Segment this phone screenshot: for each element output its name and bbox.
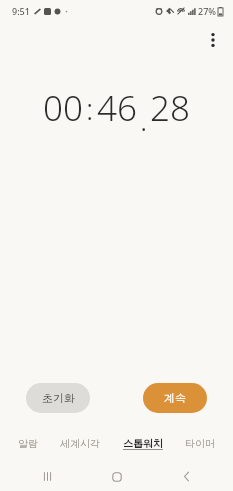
button[interactable]: 스톱워치 (123, 437, 163, 450)
button[interactable]: Recent apps (25, 462, 69, 491)
button[interactable]: More options (197, 24, 229, 56)
staticText: 27% (198, 5, 216, 17)
staticText: 46 (97, 84, 137, 132)
staticText: 00 (43, 84, 83, 132)
staticText: 타이머 (185, 437, 215, 450)
button[interactable]: 초기화 (26, 383, 90, 413)
staticText: : (86, 88, 94, 129)
button[interactable]: Home (95, 462, 139, 491)
button[interactable]: 타이머 (185, 437, 215, 450)
button[interactable]: 알람 (18, 437, 38, 450)
button[interactable]: 세계시각 (60, 437, 100, 450)
staticText: 계속 (164, 391, 186, 405)
staticText: 세계시각 (60, 437, 100, 450)
button[interactable]: 계속 (143, 383, 207, 413)
staticText: 28 (150, 84, 190, 132)
staticText: 초기화 (42, 391, 75, 405)
staticText: 알람 (18, 437, 38, 450)
button[interactable]: Back (164, 462, 208, 491)
staticText: 스톱워치 (123, 437, 163, 450)
staticText: . (140, 99, 148, 140)
staticText: 9:51 (12, 5, 30, 17)
